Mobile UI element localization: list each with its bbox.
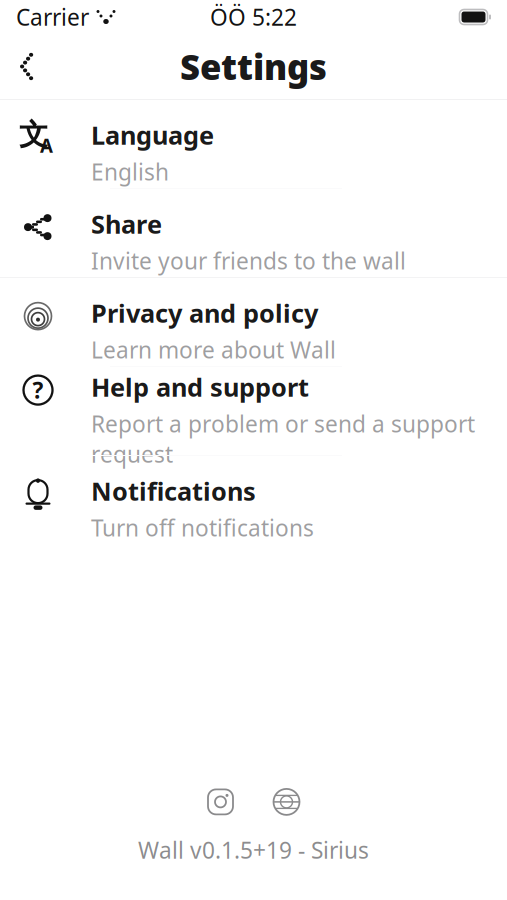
staticText: Help and support [91,370,309,404]
staticText: Turn off notifications [91,513,314,543]
staticText: Notifications [91,474,256,508]
staticText: Report a problem or send a support reque… [91,409,475,469]
button[interactable]: 文 [0,100,507,188]
button[interactable]: Website [268,784,304,820]
button[interactable]: Instagram [202,784,238,820]
staticText: Privacy and policy [91,296,318,330]
staticText: Settings [180,43,327,89]
staticText: Invite your friends to the wall [91,246,406,276]
staticText: Carrier [16,2,89,32]
staticText: ÖÖ 5:22 [210,2,297,32]
staticText: English [91,157,169,187]
staticText: A [40,133,53,158]
button[interactable]: Privacy and policy [0,278,507,366]
button[interactable]: Notifications [0,456,507,544]
staticText: Learn more about Wall [91,335,336,365]
staticText: Share [91,207,162,241]
staticText: ? [32,375,43,405]
staticText: 文 [19,117,48,153]
button[interactable]: Back [0,36,58,96]
button[interactable]: Share [0,189,507,277]
button[interactable]: ? [0,367,507,455]
staticText: Wall v0.1.5+19 - Sirius [138,835,369,865]
staticText: Language [91,118,214,152]
